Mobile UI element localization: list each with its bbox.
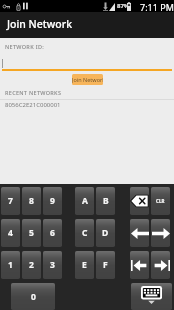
staticText: NETWORK ID: [5, 43, 45, 50]
button[interactable]: Backspace [130, 187, 149, 215]
button[interactable]: 0 [11, 283, 55, 310]
staticText: 9 [50, 195, 55, 207]
button[interactable]: CLR [151, 187, 170, 215]
button[interactable]: E [75, 251, 94, 279]
button[interactable]: Hide keyboard [131, 283, 172, 310]
staticText: Join Network [7, 17, 73, 31]
button[interactable]: 2 [22, 251, 41, 279]
staticText: 7 [8, 195, 13, 207]
staticText: 0 [31, 291, 36, 303]
staticText: C [82, 227, 88, 239]
staticText: 87% [117, 2, 130, 10]
button[interactable]: 7 [1, 187, 20, 215]
staticText: E [82, 259, 87, 271]
button[interactable]: Join Network [72, 74, 103, 85]
button[interactable]: 4 [1, 219, 20, 247]
staticText: Join Network [72, 76, 103, 83]
staticText: 8 [29, 195, 34, 207]
button[interactable]: 3 [43, 251, 62, 279]
button[interactable]: B [96, 187, 115, 215]
staticText: 3 [50, 259, 55, 271]
staticText: 1 [8, 259, 13, 271]
staticText: CLR [156, 198, 165, 204]
staticText: B [103, 195, 109, 207]
button[interactable]: 6 [43, 219, 62, 247]
button[interactable]: Move cursor left [130, 219, 149, 247]
staticText: 4 [8, 227, 13, 239]
button[interactable]: F [96, 251, 115, 279]
button[interactable]: Join Network [0, 12, 174, 38]
staticText: RECENT NETWORKS [5, 89, 62, 96]
button[interactable]: Move cursor to end [151, 251, 170, 279]
staticText: F [103, 259, 108, 271]
staticText: 7:11 PM [140, 1, 174, 13]
button[interactable]: A [75, 187, 94, 215]
staticText: 2 [29, 259, 34, 271]
button[interactable]: 9 [43, 187, 62, 215]
staticText: D [102, 227, 109, 239]
staticText: 5 [29, 227, 34, 239]
button[interactable]: Move cursor to start [130, 251, 149, 279]
button[interactable]: Move cursor right [151, 219, 170, 247]
button[interactable]: 1 [1, 251, 20, 279]
button[interactable]: 8056C2E21C000001 [0, 99, 174, 110]
staticText: 6 [50, 227, 55, 239]
button[interactable]: C [75, 219, 94, 247]
button[interactable]: D [96, 219, 115, 247]
staticText: 8056C2E21C000001 [5, 101, 61, 109]
button[interactable]: 8 [22, 187, 41, 215]
staticText: A [82, 195, 88, 207]
button[interactable]: 5 [22, 219, 41, 247]
